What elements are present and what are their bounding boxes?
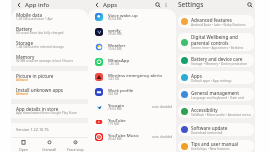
button[interactable]: YouTube xyxy=(88,114,176,129)
button[interactable]: vpnify xyxy=(88,24,176,39)
staticText: 1.49 GB used since 1 Apr xyxy=(16,17,53,21)
staticText: Battery and device care xyxy=(191,56,243,62)
staticText: Advanced features xyxy=(191,17,232,23)
staticText: Screen time • App timers • Bedtime mode xyxy=(191,46,251,50)
staticText: 1.48 GB used in internal storage xyxy=(16,45,64,49)
staticText: 1.46 GB xyxy=(108,62,120,66)
staticText: Accessibility xyxy=(191,107,218,113)
button[interactable]: App details in store xyxy=(11,104,88,118)
button[interactable]: Back xyxy=(15,1,23,9)
staticText: 76.04 MB xyxy=(108,107,122,111)
button[interactable]: Uninstall xyxy=(36,138,62,152)
button[interactable]: Battery xyxy=(11,24,88,38)
staticText: Picture in picture xyxy=(16,73,54,79)
staticText: Memory xyxy=(16,54,35,60)
button[interactable]: Digital Wellbeing and parental controls xyxy=(178,33,254,51)
staticText: vpnify xyxy=(108,27,121,33)
button[interactable]: Mobile data xyxy=(11,10,88,24)
staticText: 242 KB xyxy=(108,92,119,96)
button[interactable]: Open xyxy=(11,138,36,152)
button[interactable]: Search xyxy=(154,1,162,9)
staticText: auto disabled xyxy=(152,105,173,109)
button[interactable]: Install unknown apps xyxy=(11,85,88,99)
staticText: 3.43 KB xyxy=(108,77,119,81)
button[interactable]: Youspin xyxy=(88,99,176,114)
button[interactable]: Software update xyxy=(178,123,254,136)
staticText: 92 MB used on average in last 3 hours xyxy=(16,59,74,63)
staticText: Storage xyxy=(16,40,34,46)
staticText: 16.64 MB xyxy=(108,47,122,51)
button[interactable]: Battery and device care xyxy=(178,54,254,67)
staticText: Default apps • App settings xyxy=(191,79,232,83)
button[interactable]: Storage xyxy=(11,38,88,52)
staticText: WhatsApp xyxy=(108,57,130,63)
staticText: TalkBack • Mono audio • Assistant menu xyxy=(191,113,251,117)
button[interactable]: Picture in picture xyxy=(11,71,88,85)
staticText: Language and keyboard • Date and time xyxy=(191,96,251,100)
staticText: Mobile data xyxy=(16,12,43,18)
staticText: Uninstall xyxy=(42,147,57,152)
staticText: Weather xyxy=(108,42,126,48)
button[interactable]: Voice wake-up xyxy=(88,9,176,24)
staticText: Wireless emergency alerts xyxy=(108,72,163,78)
staticText: Apps xyxy=(191,73,202,79)
staticText: Battery xyxy=(16,26,33,32)
button[interactable]: Tips and user manual xyxy=(178,140,254,152)
staticText: Storage • Memory • Device protection xyxy=(191,62,248,66)
staticText: Install unknown apps xyxy=(16,87,64,93)
staticText: YouTube Music xyxy=(108,132,139,138)
staticText: Android Auto • Labs • Bixby Routines xyxy=(191,23,246,27)
staticText: 83.04 MB xyxy=(108,17,122,21)
staticText: Apps xyxy=(103,1,118,9)
staticText: General management xyxy=(191,90,240,96)
staticText: 0% used since last fully charged xyxy=(16,31,64,35)
staticText: Software update xyxy=(191,125,228,131)
staticText: App downloaded from Google Play Store xyxy=(16,111,77,115)
staticText: Voice wake-up xyxy=(108,12,138,18)
staticText: 29.46 MB xyxy=(108,32,122,36)
staticText: Version 1.22.10.76 xyxy=(16,127,49,132)
staticText: Tips and user manual xyxy=(191,141,239,147)
button[interactable]: General management xyxy=(178,88,254,101)
button[interactable]: Force stop xyxy=(62,138,88,152)
button[interactable]: Wireless emergency alerts xyxy=(88,69,176,84)
staticText: Work profile xyxy=(108,87,134,93)
staticText: Allowed xyxy=(16,78,28,82)
staticText: Useful tips • New features xyxy=(191,147,230,151)
button[interactable]: Apps xyxy=(178,71,254,84)
staticText: Youspin xyxy=(108,102,125,108)
button[interactable]: Memory xyxy=(11,52,88,66)
button[interactable]: More options xyxy=(163,2,169,8)
staticText: Force stop xyxy=(67,147,84,152)
staticText: App details in store xyxy=(16,106,59,112)
button[interactable]: Advanced features xyxy=(178,15,254,28)
button[interactable]: Back xyxy=(93,1,101,9)
button[interactable]: Accessibility xyxy=(178,105,254,118)
staticText: Settings xyxy=(178,0,204,9)
staticText: Open xyxy=(19,147,28,152)
staticText: App info xyxy=(25,1,50,9)
staticText: 175 MB xyxy=(108,122,119,126)
button[interactable]: YouTube Music xyxy=(88,129,176,144)
button[interactable]: WhatsApp xyxy=(88,54,176,69)
staticText: auto disabled xyxy=(152,135,173,139)
staticText: Allowed xyxy=(16,92,28,96)
staticText: YouTube xyxy=(108,117,126,123)
staticText: Digital Wellbeing and parental controls xyxy=(191,34,251,46)
staticText: 40.44 MB xyxy=(108,137,122,141)
button[interactable]: Weather xyxy=(88,39,176,54)
button[interactable]: Search xyxy=(246,1,254,9)
staticText: Download and install xyxy=(191,131,223,135)
button[interactable]: Work profile xyxy=(88,84,176,99)
